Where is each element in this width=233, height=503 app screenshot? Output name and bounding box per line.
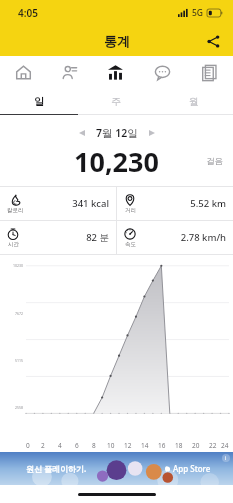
button[interactable]: Ad info [222, 454, 230, 462]
staticText: 24 [221, 441, 229, 450]
staticText: 통계 [104, 33, 130, 49]
staticText: 시간 [8, 241, 19, 248]
staticText: 18 [175, 441, 183, 450]
button[interactable]: Chat [139, 56, 186, 88]
button[interactable]: Statistics [92, 56, 139, 88]
staticText: 10 [107, 441, 115, 450]
button[interactable]: 일 [0, 88, 77, 114]
staticText: 5G [192, 7, 204, 19]
staticText: 7672 [15, 311, 24, 316]
staticText: 원신 플레이하기. [26, 463, 87, 474]
button[interactable]: 칼로리 [0, 187, 116, 220]
button[interactable]: 속도 [117, 221, 233, 254]
staticText: i [225, 455, 227, 462]
button[interactable]: 월 [155, 88, 233, 114]
staticText: 2 [41, 441, 45, 450]
staticText: 2558 [15, 405, 24, 410]
staticText: 5115 [15, 358, 24, 363]
button[interactable]: More [186, 56, 233, 88]
staticText: 12 [124, 441, 132, 450]
staticText: 거리 [125, 207, 136, 214]
staticText: 속도 [125, 241, 136, 248]
staticText: 월 [189, 95, 199, 108]
staticText: 일 [34, 95, 44, 108]
button[interactable]: Home [0, 56, 46, 88]
staticText: 6 [75, 441, 79, 450]
staticText: 4 [58, 441, 62, 450]
staticText: 10,230 [74, 143, 159, 180]
staticText: 7월 12일 [96, 126, 138, 140]
staticText: 5.52 km [136, 197, 226, 210]
staticText: App Store [173, 463, 211, 474]
staticText: 8 [92, 441, 96, 450]
staticText: 14 [141, 441, 149, 450]
button[interactable]: 거리 [117, 187, 233, 220]
button[interactable]: 시간 [0, 221, 116, 254]
button[interactable]: Advertisement [0, 452, 233, 485]
button[interactable]: 주 [77, 88, 155, 114]
staticText: 칼로리 [7, 207, 24, 214]
staticText: 0 [26, 441, 30, 450]
button[interactable]: Next day [144, 125, 160, 141]
staticText: 걸음 [206, 156, 223, 167]
staticText: 82 분 [19, 231, 109, 244]
button[interactable]: Share [201, 29, 225, 53]
staticText: 4:05 [18, 6, 38, 20]
staticText: 16 [158, 441, 166, 450]
staticText: 341 kcal [24, 197, 109, 210]
staticText: 2.78 km/h [136, 231, 226, 244]
staticText: 22 [209, 441, 217, 450]
button[interactable]: Previous day [74, 125, 90, 141]
button[interactable]: Friends [46, 56, 92, 88]
staticText: 주 [111, 95, 121, 108]
staticText: 10230 [13, 263, 24, 268]
staticText: 20 [192, 441, 200, 450]
